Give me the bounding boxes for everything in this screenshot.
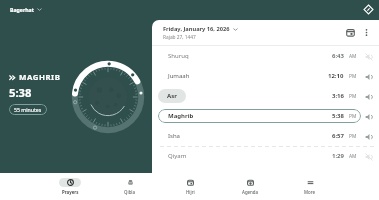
- button[interactable]: Hijri: [160, 173, 220, 200]
- staticText: 5:38: [9, 85, 32, 100]
- staticText: 6:57: [332, 132, 344, 140]
- button[interactable]: Jumaah: [152, 66, 379, 86]
- staticText: Agenda: [242, 189, 259, 195]
- button[interactable]: Toggle adhan for Jumaah: [362, 70, 375, 83]
- staticText: PM: [349, 93, 357, 100]
- staticText: AM: [349, 53, 357, 60]
- staticText: Isha: [168, 132, 180, 140]
- button[interactable]: Toggle adhan for Maghrib: [362, 110, 375, 123]
- staticText: Hijri: [186, 189, 195, 195]
- button[interactable]: 55 minutes: [9, 104, 47, 115]
- button[interactable]: Qibla: [100, 173, 160, 200]
- button[interactable]: Qibla compass: [364, 5, 373, 14]
- staticText: Jumaah: [168, 72, 190, 80]
- staticText: AM: [349, 153, 357, 160]
- button[interactable]: Toggle adhan for Asr: [362, 90, 375, 103]
- staticText: PM: [349, 133, 357, 140]
- button[interactable]: Shuruq: [152, 46, 379, 66]
- staticText: PM: [349, 73, 357, 80]
- staticText: 6:43: [332, 52, 344, 60]
- button[interactable]: Maghrib: [152, 106, 379, 126]
- button[interactable]: Asr: [152, 86, 379, 106]
- staticText: 12:10: [328, 72, 344, 80]
- staticText: More: [304, 189, 316, 195]
- staticText: 5:38: [332, 112, 344, 120]
- button[interactable]: Bagerhat: [8, 4, 44, 15]
- button[interactable]: More: [280, 173, 340, 200]
- button[interactable]: More options: [359, 25, 374, 40]
- staticText: Bagerhat: [10, 6, 34, 13]
- button[interactable]: Qiyam: [152, 146, 379, 166]
- staticText: Maghrib: [168, 112, 194, 120]
- staticText: Rajab 27, 1447: [163, 34, 196, 41]
- button[interactable]: Isha: [152, 126, 379, 146]
- staticText: Qibla: [124, 189, 136, 195]
- staticText: PM: [349, 113, 357, 120]
- button[interactable]: Prayers: [40, 173, 100, 200]
- staticText: 55 minutes: [14, 106, 42, 113]
- button[interactable]: Toggle adhan for Qiyam: [362, 150, 375, 163]
- staticText: Asr: [167, 92, 177, 100]
- staticText: Qiyam: [168, 152, 187, 160]
- button[interactable]: Agenda: [220, 173, 280, 200]
- staticText: Prayers: [62, 189, 79, 195]
- staticText: 3:16: [332, 92, 344, 100]
- staticText: MAGHRIB: [19, 72, 61, 83]
- staticText: Friday, January 16, 2026: [163, 25, 230, 33]
- button[interactable]: Toggle adhan for Shuruq: [362, 50, 375, 63]
- staticText: Shuruq: [168, 52, 189, 60]
- staticText: 1:29: [332, 152, 344, 160]
- button[interactable]: Calendar: [343, 25, 358, 40]
- button[interactable]: Toggle adhan for Isha: [362, 130, 375, 143]
